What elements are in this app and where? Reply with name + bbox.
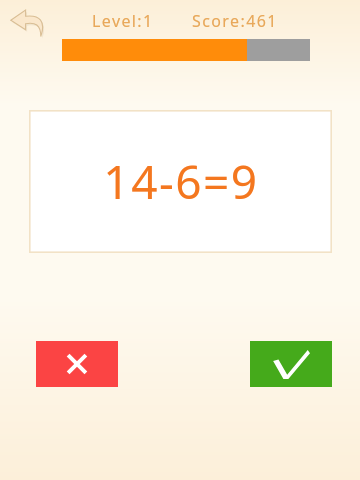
button[interactable]: Back [8,6,48,40]
staticText: Score:461 [192,10,278,32]
staticText: Level:1 [92,10,154,32]
staticText: 14-6=9 [103,150,259,213]
button[interactable]: Wrong [36,341,118,387]
button[interactable]: Correct [250,341,332,387]
